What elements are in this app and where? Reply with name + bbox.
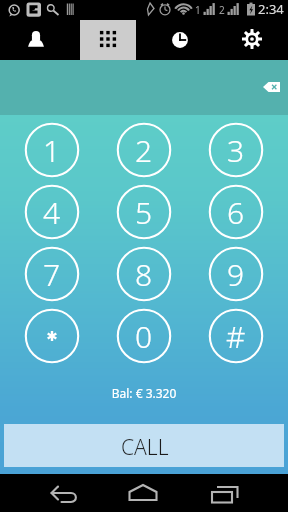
staticText: 7 [43, 254, 61, 295]
button[interactable]: Settings [216, 18, 288, 60]
button[interactable]: Call log [144, 18, 216, 60]
button[interactable]: 5 [116, 184, 172, 240]
staticText: Bal: € 3.320 [0, 385, 288, 401]
staticText: 8 [135, 254, 153, 295]
staticText: CALL [121, 433, 169, 462]
button[interactable]: 3 [208, 122, 264, 178]
button[interactable]: 4 [24, 184, 80, 240]
staticText: 0 [135, 316, 153, 357]
button[interactable]: 8 [116, 246, 172, 302]
button[interactable]: Recent apps [210, 477, 242, 509]
staticText: 1 [43, 130, 61, 171]
button[interactable]: Dialpad [72, 18, 144, 60]
button[interactable]: Backspace [263, 82, 280, 92]
button[interactable]: 2 [116, 122, 172, 178]
button[interactable]: Home [128, 477, 160, 509]
button[interactable] [24, 308, 80, 364]
staticText: 1 [195, 3, 201, 17]
button[interactable]: 9 [208, 246, 264, 302]
button[interactable]: 7 [24, 246, 80, 302]
staticText: 5 [135, 192, 153, 233]
staticText: # [226, 316, 246, 357]
staticText: 3 [227, 130, 245, 171]
staticText: 4 [43, 192, 61, 233]
button[interactable]: Contacts [0, 18, 72, 60]
button[interactable]: CALL [4, 424, 284, 467]
button[interactable]: Back [47, 477, 81, 509]
button[interactable]: 1 [24, 122, 80, 178]
staticText: 9 [227, 254, 245, 295]
button[interactable]: # [208, 308, 264, 364]
staticText: 2 [219, 3, 225, 17]
button[interactable]: 6 [208, 184, 264, 240]
staticText: 6 [227, 192, 245, 233]
staticText: 2 [135, 130, 153, 171]
button[interactable]: 0 [116, 308, 172, 364]
staticText: 2:34 [258, 0, 284, 18]
